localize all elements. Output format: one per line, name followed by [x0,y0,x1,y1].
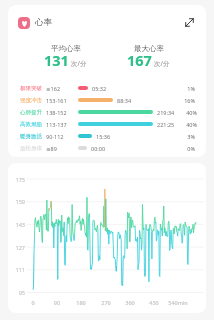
staticText: 0% [173,145,195,152]
staticText: 159 [8,198,25,205]
staticText: 540min [166,299,190,306]
button[interactable]: 心肺提升 [8,106,206,118]
staticText: 95 [8,289,25,296]
staticText: 175 [8,176,25,183]
staticText: 131 [44,50,69,70]
staticText: 450 [142,299,166,306]
staticText: 167 [127,50,152,70]
staticText: 15:36 [96,133,111,140]
staticText: 180 [69,299,93,306]
staticText: 平均心率 [51,44,81,53]
button[interactable]: 强度冲击 [8,94,206,106]
staticText: 40% [175,109,197,116]
staticText: 暖身激活 [20,133,42,140]
button[interactable]: Expand chart [181,14,198,31]
button[interactable]: 暖身激活 [8,130,206,142]
staticText: 90 [45,299,69,306]
staticText: 270 [94,299,118,306]
staticText: 219:34 [157,109,175,116]
staticText: 次/分 [71,59,87,68]
staticText: 111 [8,266,25,273]
staticText: 360 [118,299,142,306]
staticText: 放松身体 [20,145,42,152]
staticText: 最大心率 [134,44,164,53]
staticText: 88:34 [117,97,132,104]
staticText: 强度冲击 [20,97,42,104]
staticText: 1% [173,85,195,92]
staticText: 高效燃脂 [20,121,42,128]
staticText: 127 [8,244,25,251]
staticText: 138-152 [46,109,67,116]
button[interactable]: 高效燃脂 [8,118,206,130]
staticText: 90-112 [46,133,64,140]
button[interactable]: 极限突破 [8,82,206,94]
button[interactable]: 放松身体 [8,142,206,154]
staticText: 113-137 [46,121,67,128]
staticText: ≥162 [46,85,61,92]
staticText: 心率 [35,17,52,28]
staticText: 次/分 [154,59,170,68]
staticText: 00:00 [91,145,106,152]
staticText: 221:25 [157,121,175,128]
staticText: 143 [8,221,25,228]
staticText: 153-161 [46,97,67,104]
staticText: 0 [21,299,45,306]
staticText: 极限突破 [20,85,42,92]
staticText: 05:32 [92,85,107,92]
staticText: 心肺提升 [20,109,42,116]
staticText: ≤89 [46,145,57,152]
staticText: 40% [175,121,197,128]
staticText: 3% [173,133,195,140]
staticText: 16% [173,97,195,104]
